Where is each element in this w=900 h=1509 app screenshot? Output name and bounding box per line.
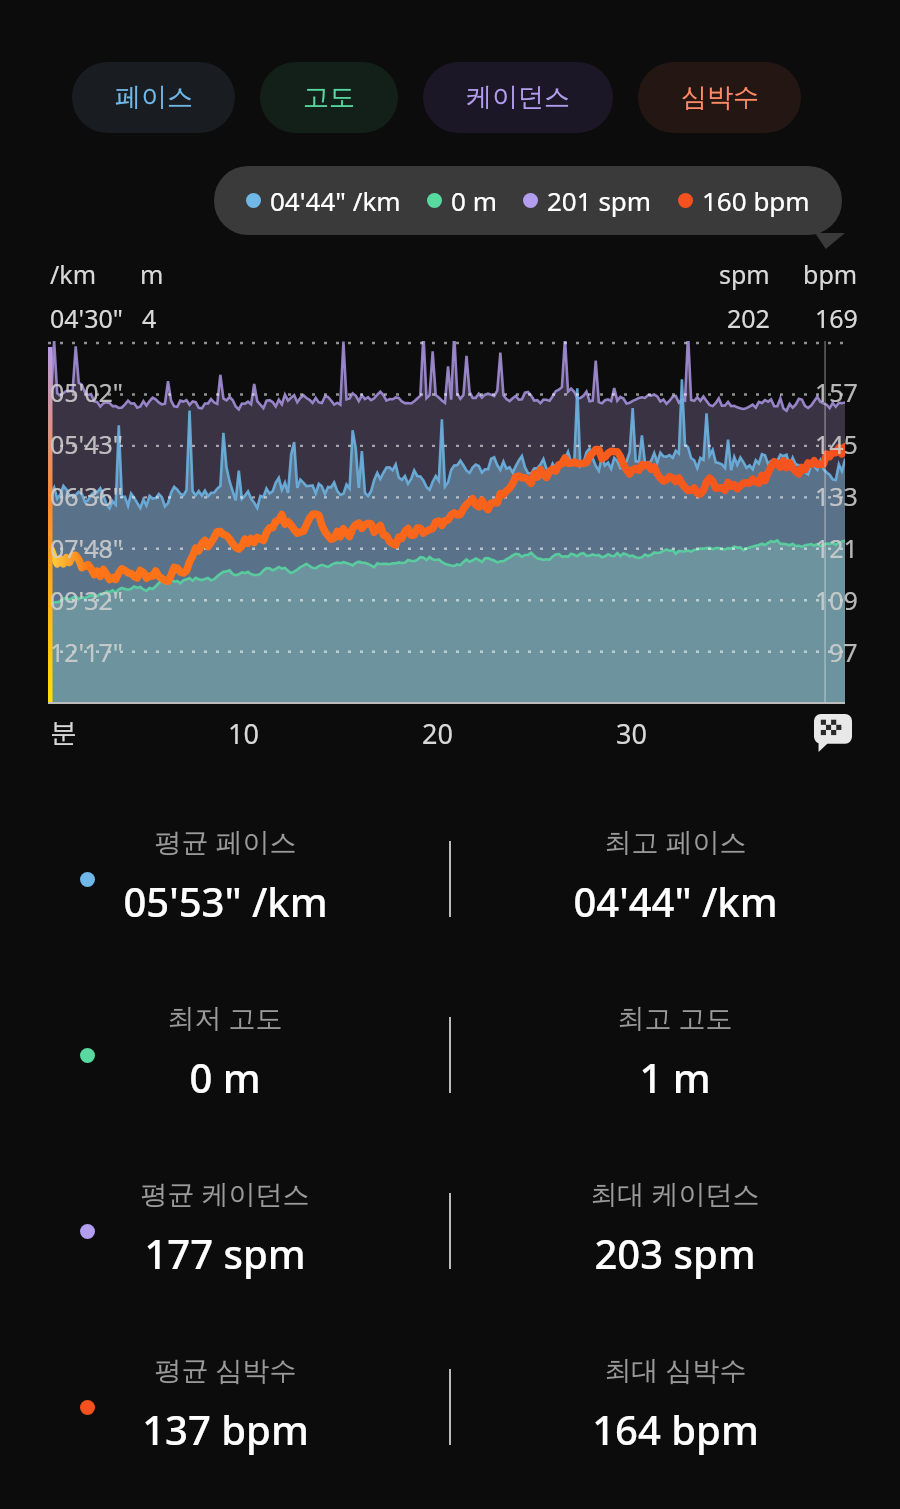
staticText: 0 m: [451, 183, 497, 218]
staticText: 최고 고도: [617, 999, 733, 1036]
staticText: /km: [50, 257, 97, 291]
button[interactable]: 최고 고도: [450, 967, 900, 1104]
staticText: 분: [50, 716, 77, 750]
staticText: 121: [815, 531, 858, 565]
staticText: 1 m: [639, 1050, 711, 1104]
staticText: 페이스: [115, 81, 193, 114]
staticText: 최저 고도: [167, 999, 283, 1036]
staticText: 04'30": [50, 301, 124, 335]
button[interactable]: 최고 페이스: [450, 791, 900, 928]
staticText: 케이던스: [466, 81, 570, 114]
button[interactable]: 최대 심박수: [450, 1319, 900, 1456]
staticText: 177 spm: [144, 1226, 306, 1280]
button[interactable]: 평균 심박수: [0, 1319, 450, 1456]
staticText: 0 m: [189, 1050, 261, 1104]
staticText: 04'44" /km: [573, 874, 778, 928]
staticText: 20: [422, 715, 453, 752]
button[interactable]: Finish: [814, 714, 852, 752]
staticText: 160 bpm: [702, 183, 810, 218]
staticText: 109: [815, 583, 858, 617]
staticText: 05'43": [50, 427, 124, 461]
button[interactable]: 심박수: [638, 62, 801, 133]
staticText: 04'44" /km: [270, 183, 401, 218]
staticText: 12'17": [50, 635, 124, 669]
staticText: 164 bpm: [592, 1402, 759, 1456]
staticText: 최대 케이던스: [590, 1175, 760, 1212]
staticText: 09'32": [50, 583, 124, 617]
staticText: 4: [142, 301, 157, 335]
staticText: 169: [815, 301, 858, 335]
staticText: m: [140, 257, 164, 291]
staticText: 최고 페이스: [604, 823, 747, 860]
staticText: 137 bpm: [142, 1402, 309, 1456]
staticText: 평균 심박수: [154, 1351, 297, 1388]
button[interactable]: 고도: [260, 62, 398, 133]
staticText: 평균 케이던스: [140, 1175, 310, 1212]
staticText: 157: [815, 375, 858, 409]
button[interactable]: 04'44" /km: [214, 166, 842, 235]
staticText: 10: [228, 715, 259, 752]
staticText: 고도: [303, 81, 355, 114]
button[interactable]: 평균 케이던스: [0, 1143, 450, 1280]
staticText: 201 spm: [547, 183, 652, 218]
button[interactable]: 평균 페이스: [0, 791, 450, 928]
staticText: 07'48": [50, 531, 124, 565]
staticText: 145: [815, 427, 858, 461]
button[interactable]: 최저 고도: [0, 967, 450, 1104]
button[interactable]: 케이던스: [423, 62, 613, 133]
staticText: 평균 페이스: [154, 823, 297, 860]
staticText: bpm: [803, 257, 858, 291]
staticText: 06'36": [50, 479, 124, 513]
staticText: 05'02": [50, 375, 124, 409]
staticText: 심박수: [681, 81, 759, 114]
button[interactable]: 페이스: [72, 62, 235, 133]
button[interactable]: 최대 케이던스: [450, 1143, 900, 1280]
staticText: spm: [719, 257, 770, 291]
staticText: 05'53" /km: [123, 874, 328, 928]
staticText: 97: [829, 635, 858, 669]
staticText: 202: [727, 301, 770, 335]
staticText: 133: [815, 479, 858, 513]
staticText: 최대 심박수: [604, 1351, 747, 1388]
staticText: 203 spm: [594, 1226, 756, 1280]
staticText: 30: [616, 715, 647, 752]
